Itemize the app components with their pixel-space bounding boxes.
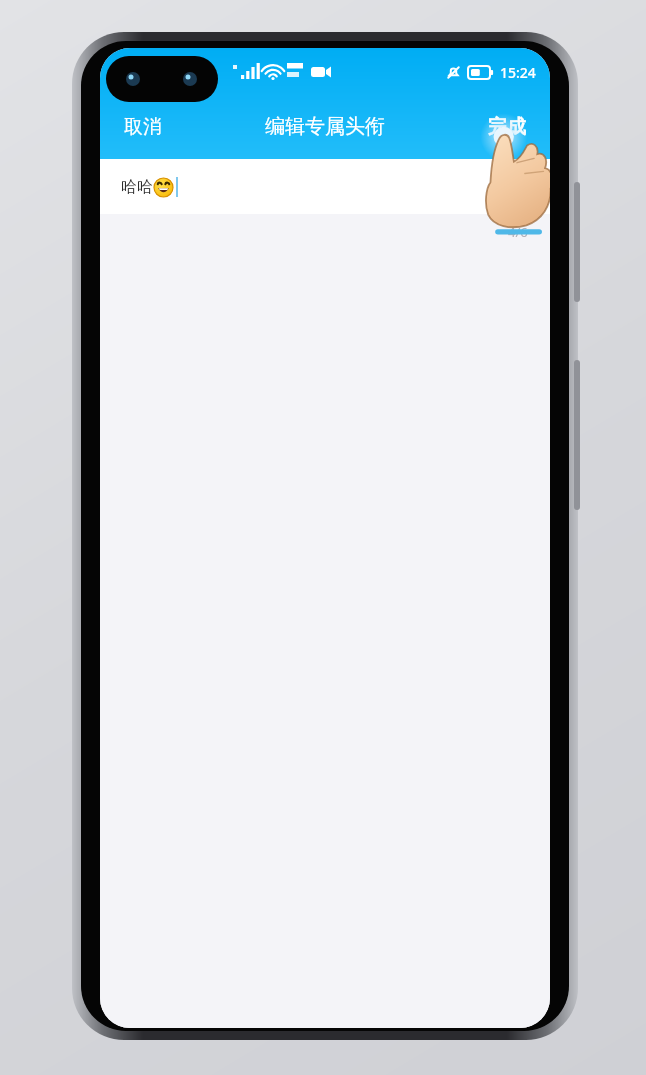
staticText: 4/6: [508, 223, 528, 241]
staticText: 编辑专属头衔: [265, 114, 385, 139]
staticText: 完成: [488, 115, 526, 139]
button[interactable]: 取消: [110, 107, 176, 147]
staticText: 取消: [124, 115, 162, 139]
button[interactable]: 哈哈: [100, 159, 550, 214]
button[interactable]: 完成: [474, 107, 540, 147]
staticText: 哈哈: [121, 177, 153, 197]
staticText: 15:24: [500, 63, 536, 82]
other: Tap 完成: [478, 126, 550, 234]
